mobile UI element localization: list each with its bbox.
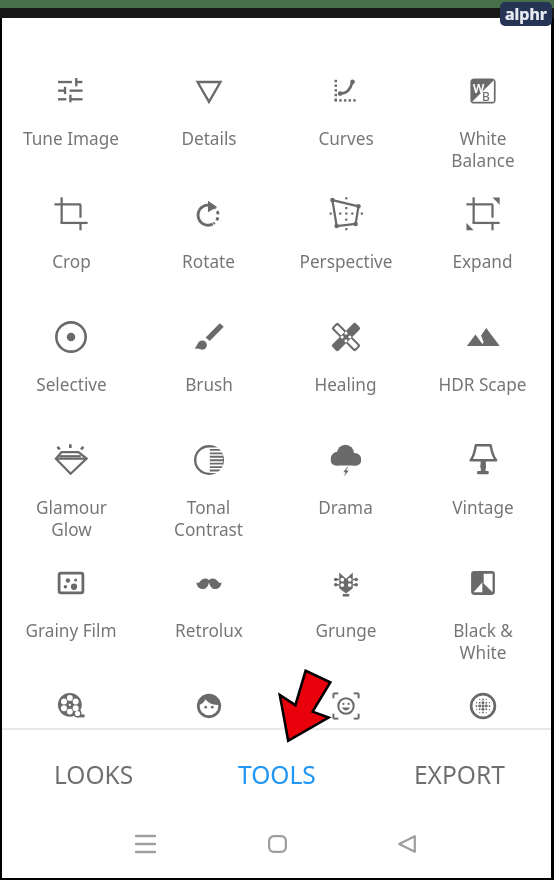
button[interactable]: Grunge [277, 555, 414, 678]
staticText: Crop [52, 250, 91, 273]
button[interactable]: EXPORT [368, 730, 551, 818]
button[interactable]: Grainy Film [2, 555, 140, 678]
staticText: Selective [36, 373, 107, 396]
staticText: W [473, 80, 485, 96]
button[interactable]: Retrolux [140, 555, 277, 678]
staticText: White Balance [451, 127, 515, 172]
button[interactable]: Recent apps [123, 822, 167, 866]
button[interactable]: Tonal Contrast [140, 432, 277, 555]
staticText: Retrolux [175, 619, 243, 642]
button[interactable]: TOOLS [185, 730, 368, 818]
button[interactable]: Rotate [140, 186, 277, 309]
staticText: Healing [314, 373, 377, 396]
staticText: Rotate [182, 250, 235, 273]
staticText: Grainy Film [25, 619, 117, 642]
staticText: Drama [318, 496, 373, 519]
button[interactable]: Black & White [414, 555, 551, 678]
staticText: Curves [318, 127, 374, 150]
button[interactable]: Home [255, 822, 299, 866]
button[interactable] [277, 678, 414, 728]
staticText: TOOLS [238, 758, 316, 791]
button[interactable] [2, 678, 140, 728]
button[interactable]: Crop [2, 186, 140, 309]
staticText: Glamour Glow [36, 496, 107, 541]
button[interactable]: Back [385, 822, 429, 866]
button[interactable]: Details [140, 63, 277, 186]
staticText: Perspective [299, 250, 393, 273]
button[interactable] [414, 678, 551, 728]
button[interactable]: Curves [277, 63, 414, 186]
staticText: B [482, 88, 490, 104]
staticText: alphr [505, 3, 548, 25]
staticText: Black & White [453, 619, 513, 664]
button[interactable]: Brush [140, 309, 277, 432]
button[interactable]: Perspective [277, 186, 414, 309]
staticText: Tonal Contrast [174, 496, 243, 541]
button[interactable]: LOOKS [2, 730, 185, 818]
staticText: HDR Scape [438, 373, 527, 396]
staticText: Grunge [315, 619, 377, 642]
button[interactable]: Selective [2, 309, 140, 432]
button[interactable] [140, 678, 277, 728]
staticText: Details [181, 127, 237, 150]
button[interactable]: Vintage [414, 432, 551, 555]
button[interactable]: HDR Scape [414, 309, 551, 432]
button[interactable]: Glamour Glow [2, 432, 140, 555]
staticText: Brush [185, 373, 233, 396]
button[interactable]: Expand [414, 186, 551, 309]
button[interactable]: Tune Image [2, 63, 140, 186]
button[interactable]: White Balance [414, 63, 551, 186]
staticText: Vintage [452, 496, 514, 519]
staticText: EXPORT [414, 758, 505, 791]
staticText: Expand [452, 250, 513, 273]
button[interactable]: Drama [277, 432, 414, 555]
button[interactable]: Healing [277, 309, 414, 432]
staticText: Tune Image [23, 127, 119, 150]
staticText: LOOKS [54, 758, 134, 791]
